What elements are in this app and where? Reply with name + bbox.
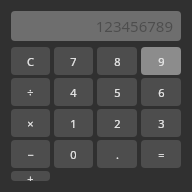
button[interactable]: Clear	[11, 47, 50, 75]
staticText: 9	[158, 54, 165, 69]
button[interactable]: 1	[54, 109, 93, 137]
button[interactable]: Decimal point	[97, 140, 137, 168]
staticText: .	[116, 147, 119, 162]
button[interactable]: 4	[54, 78, 93, 106]
staticText: 7	[70, 54, 77, 69]
staticText: 3	[158, 116, 165, 131]
staticText: C	[27, 54, 34, 69]
button[interactable]: Display	[11, 11, 181, 41]
staticText: 8	[114, 54, 121, 69]
button[interactable]: Plus	[11, 171, 50, 181]
staticText: 4	[70, 85, 77, 100]
staticText: =	[158, 147, 165, 162]
staticText: +	[27, 171, 34, 181]
staticText: −	[27, 147, 34, 162]
button[interactable]: Minus	[11, 140, 50, 168]
button[interactable]: Divide	[11, 78, 50, 106]
staticText: 5	[114, 85, 121, 100]
staticText: 2	[114, 116, 121, 131]
staticText: 0	[70, 147, 77, 162]
button[interactable]: 0	[54, 140, 93, 168]
staticText: ×	[27, 116, 34, 131]
staticText: 6	[158, 85, 165, 100]
button[interactable]: 5	[97, 78, 137, 106]
button[interactable]: Multiply	[11, 109, 50, 137]
button[interactable]: 2	[97, 109, 137, 137]
button[interactable]: 3	[141, 109, 181, 137]
button[interactable]: 8	[97, 47, 137, 75]
button[interactable]: 9	[141, 47, 181, 75]
button[interactable]: 6	[141, 78, 181, 106]
staticText: 123456789	[95, 16, 173, 36]
button[interactable]: 7	[54, 47, 93, 75]
staticText: 1	[70, 116, 77, 131]
button[interactable]: Equals	[141, 140, 181, 168]
staticText: ÷	[27, 85, 34, 100]
